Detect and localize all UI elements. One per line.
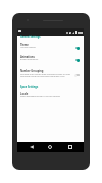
staticText: General Settings bbox=[20, 35, 41, 38]
button[interactable] bbox=[17, 90, 84, 99]
button[interactable]: Home bbox=[46, 143, 54, 151]
button[interactable] bbox=[17, 54, 84, 63]
button[interactable]: Back bbox=[28, 143, 36, 151]
button[interactable]: Recent apps bbox=[66, 143, 74, 151]
staticText: Select language/locale to use for option… bbox=[20, 95, 61, 98]
staticText: Number Grouping bbox=[20, 69, 44, 73]
staticText: formatted using the thousand separator c… bbox=[20, 75, 65, 78]
button[interactable]: Toggle on bbox=[73, 45, 81, 51]
staticText: Grouping that makes large numbers easier… bbox=[20, 73, 70, 76]
staticText: Locale bbox=[20, 92, 29, 96]
button[interactable]: Toggle on bbox=[73, 57, 81, 63]
button[interactable]: Toggle off bbox=[73, 72, 81, 78]
button[interactable] bbox=[17, 68, 84, 80]
staticText: Theme bbox=[20, 43, 29, 47]
staticText: Space Settings bbox=[20, 85, 39, 88]
staticText: Animations bbox=[20, 55, 35, 59]
staticText: Use dark theme bbox=[20, 46, 36, 49]
button[interactable] bbox=[17, 42, 84, 51]
staticText: Enable animations bbox=[20, 58, 39, 61]
